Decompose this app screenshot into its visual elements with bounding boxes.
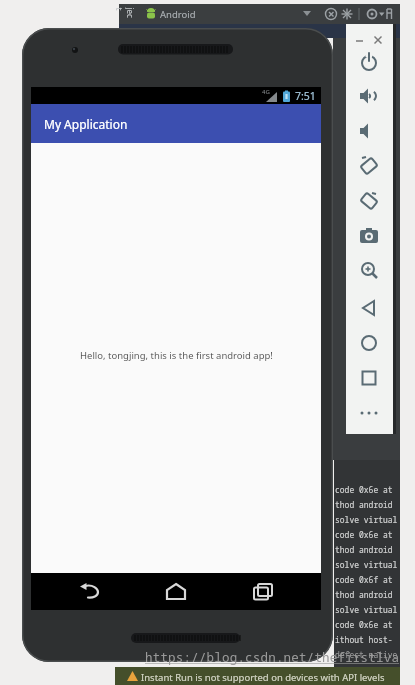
staticText: solve virtual m [335,514,400,529]
staticText: code 0x6e at 0x [335,529,400,544]
staticText: thod android vi [335,589,400,604]
staticText: code 0x6f at 0x [335,574,400,589]
staticText: thod android vi [335,544,400,559]
button[interactable] [358,190,380,212]
button[interactable] [358,297,380,319]
button[interactable] [373,35,383,45]
button[interactable]: ject [119,4,132,24]
button[interactable] [358,367,380,389]
button[interactable] [251,583,275,600]
staticText: code 0x6e at 0x [335,619,400,634]
staticText: ject [115,7,135,20]
button[interactable]: Instant Run is not supported on devices … [115,667,400,685]
button[interactable] [358,155,380,177]
button[interactable] [358,332,380,354]
button[interactable] [358,120,380,142]
staticText: solve virtual m [335,604,400,619]
staticText: thod android vi [335,499,400,514]
button[interactable] [77,584,101,599]
button[interactable] [164,583,188,600]
button[interactable] [358,85,380,107]
staticText: https://blog.csdn.net/thefirstlva [145,649,400,666]
button[interactable] [366,8,385,20]
staticText: code 0x6e at 0x [335,484,400,499]
staticText: 4G [262,88,270,96]
staticText: 7:51 [295,89,316,103]
button[interactable] [355,36,365,44]
button[interactable] [358,225,380,247]
button[interactable] [358,260,380,282]
staticText: ithout host-sid [335,634,400,649]
button[interactable] [341,8,353,20]
button[interactable] [303,11,311,17]
staticText: My Application [44,116,128,132]
staticText: Instant Run is not supported on devices … [141,671,385,684]
button[interactable]: My Application [31,104,321,143]
button[interactable] [358,51,380,73]
staticText: solve virtual m [335,559,400,574]
button[interactable] [325,8,337,20]
staticText: Android [160,8,196,21]
staticText: Hello, tongjing, this is the first andro… [80,349,273,362]
button[interactable] [358,402,380,424]
button[interactable] [385,8,395,21]
staticText: defect native [335,649,398,664]
